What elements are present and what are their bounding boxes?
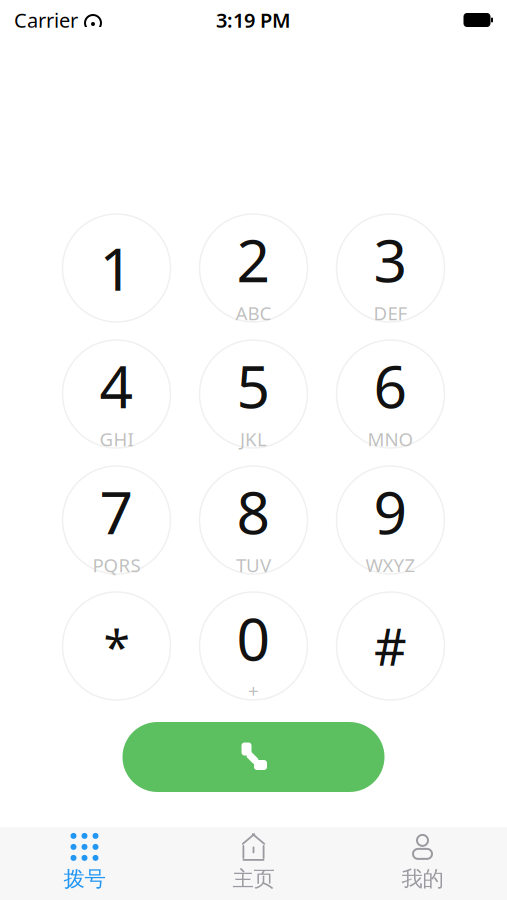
staticText: + [248, 678, 259, 703]
staticText: GHI [99, 427, 133, 451]
staticText: 9 [373, 473, 407, 551]
button[interactable]: Call [122, 722, 384, 792]
button[interactable]: # [336, 592, 444, 700]
staticText: 我的 [401, 866, 443, 892]
staticText: 5 [236, 347, 270, 425]
staticText: DEF [373, 301, 407, 325]
staticText: 拨号 [63, 866, 105, 892]
button[interactable]: * [62, 592, 170, 700]
staticText: 7 [99, 473, 133, 551]
staticText: * [103, 614, 129, 678]
staticText: MNO [367, 427, 413, 451]
staticText: 1 [99, 229, 133, 307]
staticText: WXYZ [365, 553, 415, 577]
staticText: 0 [236, 599, 270, 677]
staticText: 6 [373, 347, 407, 425]
button[interactable]: 拨号 [0, 825, 169, 900]
staticText: ABC [235, 301, 271, 325]
staticText: 3:19 PM [216, 7, 291, 33]
button[interactable]: 我的 [338, 825, 507, 900]
button[interactable]: 9 [336, 466, 444, 574]
staticText: PQRS [92, 553, 140, 577]
button[interactable]: 1 [62, 214, 170, 322]
staticText: 4 [99, 347, 133, 425]
button[interactable]: 主页 [169, 825, 338, 900]
button[interactable]: 7 [62, 466, 170, 574]
staticText: Carrier [14, 7, 78, 33]
staticText: JKL [240, 427, 267, 451]
button[interactable]: 2 [199, 214, 307, 322]
button[interactable]: 3 [336, 214, 444, 322]
staticText: # [374, 612, 407, 680]
staticText: 8 [236, 473, 270, 551]
staticText: 2 [236, 221, 270, 299]
staticText: 3 [373, 221, 407, 299]
button[interactable]: 4 [62, 340, 170, 448]
staticText: TUV [236, 553, 271, 577]
staticText: 主页 [232, 866, 274, 892]
button[interactable]: 6 [336, 340, 444, 448]
button[interactable]: 0 [199, 592, 307, 700]
button[interactable]: 5 [199, 340, 307, 448]
button[interactable]: 8 [199, 466, 307, 574]
